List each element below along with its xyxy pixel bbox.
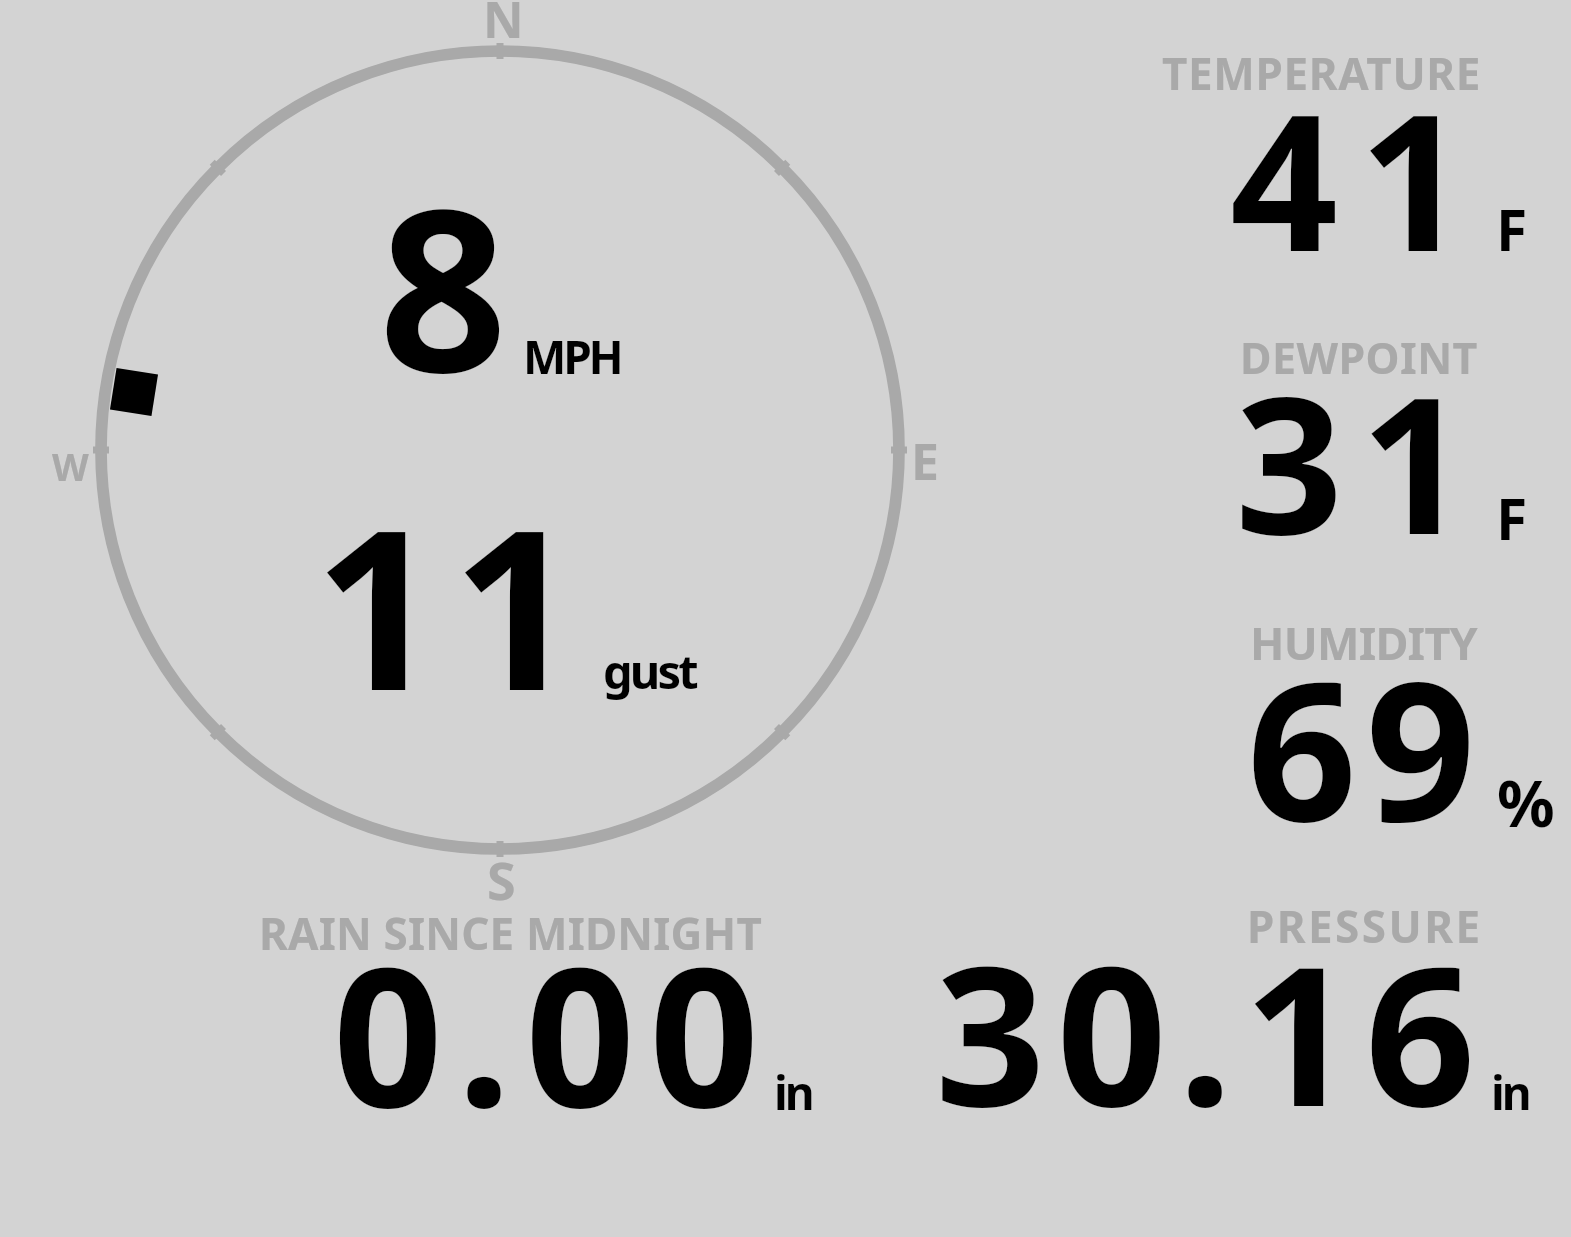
staticText: % <box>1497 759 1555 846</box>
staticText: in <box>774 1061 812 1124</box>
staticText: W <box>52 440 89 492</box>
staticText: N <box>483 0 524 53</box>
staticText: 0.00 <box>333 902 774 1164</box>
button[interactable]: Humidity 69 percent <box>1140 620 1560 830</box>
staticText: gust <box>603 639 696 703</box>
staticText: 31 <box>1235 332 1486 589</box>
staticText: RAIN SINCE MIDNIGHT <box>259 903 762 963</box>
button[interactable]: Dewpoint 31 degrees Fahrenheit <box>1140 335 1560 545</box>
staticText: F <box>1496 190 1528 268</box>
staticText: HUMIDITY <box>1250 612 1478 673</box>
staticText: MPH <box>523 325 621 388</box>
staticText: 30.16 <box>935 900 1487 1163</box>
staticText: 41 <box>1230 49 1489 306</box>
staticText: TEMPERATURE <box>1162 43 1482 103</box>
staticText: F <box>1496 479 1528 557</box>
staticText: PRESSURE <box>1247 896 1483 956</box>
button[interactable]: Pressure 30.16 inches <box>920 904 1560 1114</box>
staticText: S <box>487 844 516 915</box>
button[interactable]: Temperature 41 degrees Fahrenheit <box>1140 50 1560 260</box>
staticText: DEWPOINT <box>1240 328 1478 387</box>
button[interactable]: Rain since midnight 0.00 inches <box>250 910 830 1114</box>
staticText: 69 <box>1247 616 1485 878</box>
button[interactable]: Wind 8 miles per hour gusting 11, from w… <box>96 46 906 856</box>
staticText: in <box>1491 1061 1529 1124</box>
staticText: 11 <box>314 454 591 755</box>
staticText: E <box>911 427 939 495</box>
staticText: 8 <box>379 133 508 438</box>
